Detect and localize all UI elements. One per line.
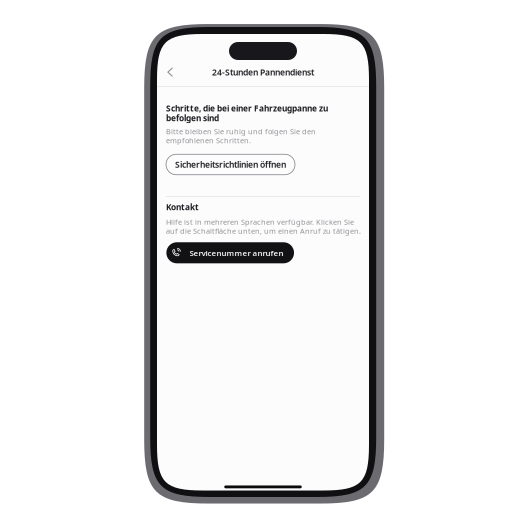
staticText: Schritte, die bei einer Fahrzeugpanne zu… [166,103,328,124]
button[interactable]: Servicenummer anrufen [166,242,294,263]
staticText: Hilfe ist in mehreren Sprachen verfügbar… [166,217,361,236]
button[interactable]: Sicherheitsrichtlinien öffnen [166,154,295,175]
staticText: Bitte bleiben Sie ruhig und folgen Sie d… [166,126,316,145]
staticText: Servicenummer anrufen [189,248,283,258]
staticText: Kontakt [166,201,199,213]
button[interactable]: Zurück [159,61,181,83]
staticText: Sicherheitsrichtlinien öffnen [175,159,286,170]
staticText: 24-Stunden Pannendienst [212,66,314,78]
